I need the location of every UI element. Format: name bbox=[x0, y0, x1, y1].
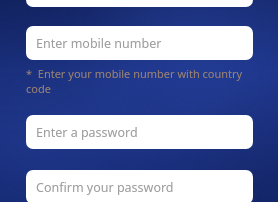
staticText: Confirm your password bbox=[36, 179, 174, 196]
button[interactable]: Enter your email bbox=[26, 0, 253, 7]
button[interactable]: Enter a password bbox=[26, 115, 253, 149]
staticText: * Enter your mobile number with country … bbox=[26, 66, 266, 96]
staticText: Enter a password bbox=[36, 124, 138, 141]
button[interactable]: Confirm your password bbox=[26, 170, 253, 202]
staticText: Enter mobile number bbox=[36, 35, 162, 52]
button[interactable]: Enter mobile number bbox=[26, 26, 253, 60]
